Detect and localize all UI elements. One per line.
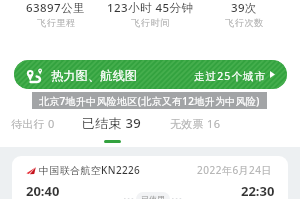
staticText: 走过25个城市	[194, 69, 267, 83]
staticText: 飞行里程	[37, 17, 76, 29]
staticText: 2022年6月24日	[197, 163, 273, 177]
staticText: 飞行次数	[225, 17, 264, 29]
staticText: 已结束 39	[82, 114, 142, 132]
staticText: 无效票 16	[170, 116, 221, 131]
other: 热力图、航线图	[27, 67, 43, 83]
button[interactable]: 无效票 16	[170, 116, 221, 131]
button[interactable]: 北京7地升中风险地区(北京又有12地升为中风险)	[32, 92, 267, 109]
staticText: 北京7地升中风险地区(北京又有12地升为中风险)	[39, 94, 260, 108]
button[interactable]: 已结束 39	[82, 114, 142, 143]
staticText: 中国联合航空KN2226	[39, 163, 141, 177]
staticText: 飞行时间	[131, 17, 170, 29]
button[interactable]: 待出行 0	[11, 116, 55, 131]
staticText: 20:40	[26, 182, 60, 199]
staticText: 22:30	[241, 182, 275, 199]
staticText: 已使用	[141, 194, 165, 199]
staticText: 热力图、航线图	[51, 68, 138, 83]
staticText: 123小时 45分钟	[107, 0, 194, 16]
staticText: 待出行 0	[11, 116, 55, 131]
staticText: 63897公里	[26, 0, 86, 16]
staticText: 39次	[231, 0, 258, 16]
button[interactable]: 热力图、航线图	[14, 60, 287, 89]
button[interactable]: 中国联合航空KN2226	[12, 156, 288, 199]
